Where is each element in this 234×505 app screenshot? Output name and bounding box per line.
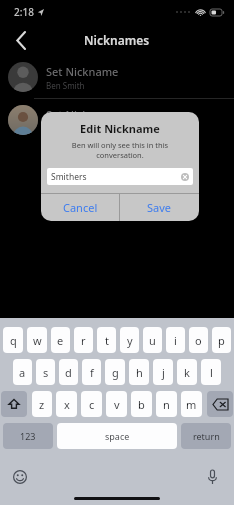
button[interactable]: z: [32, 391, 52, 417]
staticText: t: [105, 333, 109, 348]
staticText: n: [163, 397, 170, 412]
staticText: d: [65, 365, 72, 380]
button[interactable]: a: [13, 359, 32, 385]
staticText: c: [89, 397, 95, 412]
button[interactable]: Set Nickname: [0, 99, 234, 141]
button[interactable]: l: [201, 359, 221, 385]
button[interactable]: e: [51, 327, 70, 353]
staticText: s: [43, 365, 49, 380]
staticText: Set Nickname: [46, 64, 119, 79]
button[interactable]: t: [97, 327, 116, 353]
staticText: x: [64, 397, 70, 412]
staticText: b: [138, 397, 145, 412]
button[interactable]: d: [59, 359, 78, 385]
button[interactable]: Save: [120, 194, 199, 221]
button[interactable]: s: [36, 359, 55, 385]
button[interactable]: u: [143, 327, 162, 353]
button[interactable]: Clear text: [181, 173, 189, 181]
staticText: z: [39, 397, 45, 412]
staticText: m: [186, 397, 197, 412]
staticText: Ben will only see this in this conversat…: [51, 140, 189, 160]
button[interactable]: r: [74, 327, 93, 353]
staticText: q: [10, 333, 17, 348]
staticText: return: [193, 430, 220, 442]
staticText: Cancel: [63, 200, 98, 215]
button[interactable]: Shift: [1, 391, 27, 417]
button[interactable]: q: [3, 327, 23, 353]
staticText: g: [112, 365, 119, 380]
button[interactable]: m: [181, 391, 202, 417]
staticText: p: [218, 333, 225, 348]
button[interactable]: Emoji: [10, 467, 30, 487]
button[interactable]: Backspace: [207, 391, 233, 417]
button[interactable]: f: [82, 359, 101, 385]
button[interactable]: x: [56, 391, 77, 417]
button[interactable]: Cancel: [41, 194, 119, 221]
staticText: w: [33, 333, 42, 348]
staticText: h: [136, 365, 143, 380]
button[interactable]: g: [105, 359, 125, 385]
staticText: a: [19, 365, 26, 380]
staticText: Jen Smith: [46, 123, 82, 134]
staticText: f: [90, 365, 94, 380]
button[interactable]: y: [120, 327, 139, 353]
staticText: 123: [20, 430, 36, 442]
button[interactable]: w: [27, 327, 47, 353]
staticText: k: [184, 365, 190, 380]
button[interactable]: k: [177, 359, 197, 385]
button[interactable]: n: [156, 391, 177, 417]
staticText: space: [105, 430, 130, 442]
button[interactable]: return: [181, 423, 231, 449]
button[interactable]: Set Nickname: [0, 56, 234, 98]
button[interactable]: Smithers: [47, 168, 193, 185]
staticText: o: [195, 333, 202, 348]
button[interactable]: 123: [3, 423, 53, 449]
button[interactable]: space: [57, 423, 177, 449]
staticText: v: [114, 397, 120, 412]
staticText: u: [149, 333, 156, 348]
button[interactable]: h: [129, 359, 149, 385]
staticText: Nicknames: [84, 32, 150, 48]
button[interactable]: p: [212, 327, 231, 353]
button[interactable]: Dictation: [202, 467, 222, 487]
staticText: Smithers: [51, 171, 87, 183]
staticText: y: [127, 333, 133, 348]
button[interactable]: c: [81, 391, 102, 417]
staticText: Set Nickname: [46, 107, 119, 122]
button[interactable]: v: [106, 391, 127, 417]
button[interactable]: Back: [6, 25, 36, 55]
staticText: e: [57, 333, 64, 348]
staticText: Edit Nickname: [41, 121, 199, 136]
staticText: Save: [147, 200, 172, 215]
staticText: 2:18: [14, 5, 34, 19]
staticText: Ben Smith: [46, 80, 85, 91]
button[interactable]: j: [153, 359, 173, 385]
staticText: i: [174, 333, 177, 348]
staticText: j: [162, 365, 165, 380]
button[interactable]: i: [166, 327, 185, 353]
button[interactable]: o: [189, 327, 208, 353]
staticText: l: [210, 365, 213, 380]
staticText: r: [81, 333, 86, 348]
button[interactable]: b: [131, 391, 152, 417]
